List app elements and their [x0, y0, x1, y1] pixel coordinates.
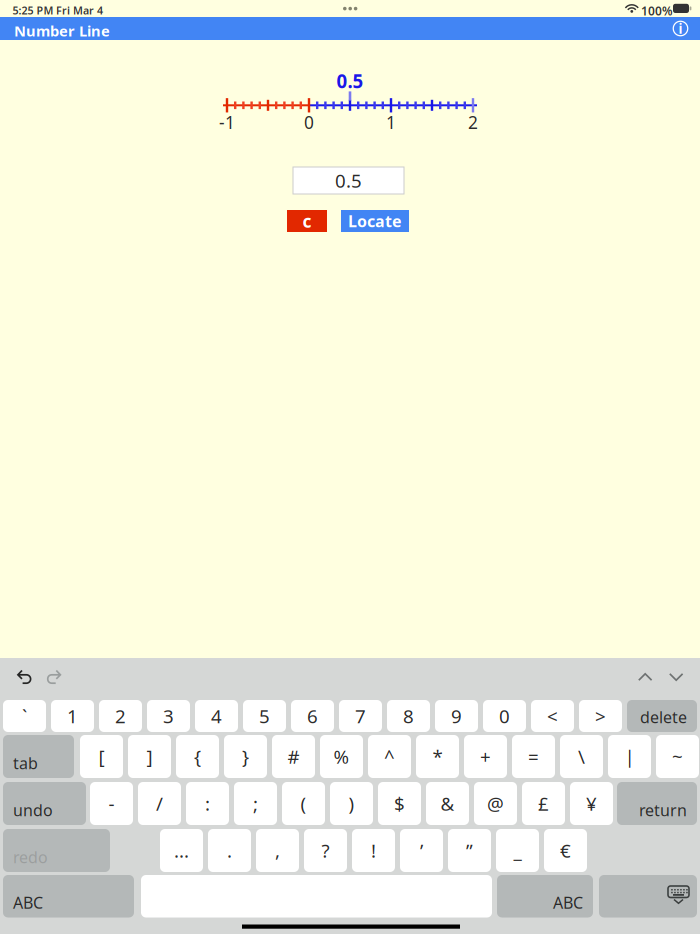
button[interactable]: ~ [656, 735, 699, 778]
staticText: 1 [386, 111, 396, 134]
button[interactable]: Hide keyboard [599, 875, 697, 917]
button[interactable]: [ [80, 735, 123, 778]
button[interactable]: ... [160, 829, 203, 872]
button[interactable]: Next field [669, 672, 684, 682]
staticText: 8 [403, 704, 414, 728]
staticText: [ [98, 744, 104, 769]
staticText: 0 [499, 704, 510, 728]
button[interactable]: undo [3, 782, 86, 825]
button[interactable]: 3 [147, 700, 190, 732]
button[interactable]: Info [666, 17, 694, 40]
button[interactable]: 9 [435, 700, 478, 732]
button[interactable]: . [208, 829, 251, 872]
button[interactable]: tab [3, 735, 74, 778]
staticText: undo [13, 799, 53, 821]
button[interactable]: } [224, 735, 267, 778]
staticText: 0.5 [335, 168, 362, 193]
staticText: 5 [259, 704, 270, 728]
button[interactable]: ” [448, 829, 491, 872]
button[interactable]: ( [282, 782, 325, 825]
button[interactable]: ABC [3, 875, 134, 917]
button[interactable]: $ [378, 782, 421, 825]
button[interactable]: redo [3, 829, 110, 872]
staticText: ^ [384, 744, 395, 769]
button[interactable]: 1 [51, 700, 94, 732]
button[interactable]: ¥ [570, 782, 613, 825]
button[interactable]: 5 [243, 700, 286, 732]
staticText: # [287, 744, 299, 769]
staticText: 6 [307, 704, 318, 728]
button[interactable]: # [272, 735, 315, 778]
button[interactable]: { [176, 735, 219, 778]
staticText: 3 [163, 704, 174, 728]
staticText: c [302, 209, 311, 232]
button[interactable]: delete [627, 700, 697, 732]
button[interactable]: / [138, 782, 181, 825]
staticText: & [440, 791, 454, 816]
button[interactable]: Undo [17, 669, 34, 684]
button[interactable]: \ [560, 735, 603, 778]
button[interactable]: return [617, 782, 697, 825]
staticText: i [678, 20, 682, 37]
button[interactable] [141, 875, 492, 917]
staticText: 100% [641, 3, 673, 19]
button[interactable]: & [426, 782, 469, 825]
button[interactable]: * [416, 735, 459, 778]
button[interactable]: 4 [195, 700, 238, 732]
button[interactable]: % [320, 735, 363, 778]
button[interactable]: 7 [339, 700, 382, 732]
button[interactable]: : [186, 782, 229, 825]
staticText: ’ [420, 838, 423, 863]
button[interactable]: Locate [341, 210, 409, 232]
staticText: / [156, 791, 163, 816]
staticText: $ [394, 791, 405, 816]
staticText: } [242, 744, 249, 769]
staticText: ¥ [586, 791, 597, 816]
staticText: tab [13, 752, 38, 774]
button[interactable]: | [608, 735, 651, 778]
staticText: ~ [672, 744, 683, 769]
button[interactable]: , [256, 829, 299, 872]
button[interactable]: 6 [291, 700, 334, 732]
button[interactable]: < [531, 700, 574, 732]
staticText: @ [487, 791, 504, 816]
staticText: ... [174, 838, 189, 863]
staticText: return [639, 799, 687, 821]
button[interactable]: @ [474, 782, 517, 825]
staticText: ” [466, 838, 473, 863]
button[interactable]: ; [234, 782, 277, 825]
button[interactable]: 2 [99, 700, 142, 732]
staticText: ; [253, 791, 258, 816]
staticText: 7 [355, 704, 366, 728]
staticText: % [333, 744, 349, 769]
button[interactable]: _ [496, 829, 539, 872]
staticText: ) [348, 791, 354, 816]
button[interactable]: + [464, 735, 507, 778]
button[interactable]: 8 [387, 700, 430, 732]
staticText: ? [321, 838, 329, 863]
button[interactable]: ! [352, 829, 395, 872]
button[interactable]: Previous field [638, 672, 653, 682]
staticText: ` [22, 704, 27, 728]
button[interactable]: ` [3, 700, 46, 732]
button[interactable]: c [287, 210, 327, 232]
button[interactable]: ] [128, 735, 171, 778]
button[interactable]: ) [330, 782, 373, 825]
staticText: * [432, 744, 442, 769]
staticText: . [227, 838, 232, 863]
button[interactable]: 0.5 [293, 167, 404, 194]
button[interactable]: 0 [483, 700, 526, 732]
staticText: + [480, 744, 491, 769]
button[interactable]: £ [522, 782, 565, 825]
staticText: 0 [304, 111, 314, 134]
button[interactable]: ^ [368, 735, 411, 778]
button[interactable]: Redo [47, 669, 64, 684]
button[interactable]: = [512, 735, 555, 778]
button[interactable]: ? [304, 829, 347, 872]
button[interactable]: ABC [497, 875, 593, 917]
staticText: 2 [468, 111, 478, 134]
button[interactable]: - [90, 782, 133, 825]
button[interactable]: ’ [400, 829, 443, 872]
button[interactable]: > [579, 700, 622, 732]
button[interactable]: € [544, 829, 587, 872]
